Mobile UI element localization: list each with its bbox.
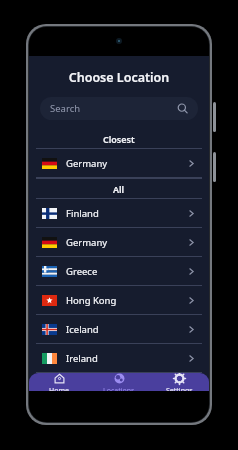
staticText: Finland xyxy=(66,207,99,220)
staticText: Ireland xyxy=(66,352,98,365)
button[interactable]: Germany xyxy=(29,228,209,256)
button[interactable]: Home xyxy=(29,373,89,391)
other: Search xyxy=(177,103,188,114)
staticText: Settings xyxy=(166,386,193,391)
button[interactable]: Search xyxy=(40,97,198,120)
button[interactable]: Iceland xyxy=(29,315,209,343)
staticText: Choose Location xyxy=(29,69,209,86)
button[interactable]: Locations xyxy=(89,373,149,391)
staticText: Closest xyxy=(103,133,135,145)
button[interactable]: Settings xyxy=(149,373,209,391)
staticText: Hong Kong xyxy=(66,294,117,307)
other: Home xyxy=(54,373,65,384)
staticText: Home xyxy=(49,386,69,391)
staticText: All xyxy=(113,183,125,195)
other: Settings xyxy=(174,373,185,384)
staticText: Iceland xyxy=(66,323,99,336)
button[interactable]: Ireland xyxy=(29,344,209,372)
staticText: Locations xyxy=(103,386,135,391)
button[interactable]: Germany xyxy=(29,149,209,177)
other: Locations xyxy=(114,373,125,384)
button[interactable]: Greece xyxy=(29,257,209,285)
staticText: Germany xyxy=(66,157,108,170)
staticText: Greece xyxy=(66,265,98,278)
staticText: Germany xyxy=(66,236,108,249)
staticText: Search xyxy=(50,102,81,115)
button[interactable]: Finland xyxy=(29,199,209,227)
button[interactable]: Hong Kong xyxy=(29,286,209,314)
